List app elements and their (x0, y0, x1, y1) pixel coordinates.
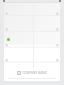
staticText: COMPANY NAME (22, 71, 47, 75)
button[interactable]: Status online (4, 2, 60, 81)
button[interactable]: Status online (7, 38, 10, 41)
button[interactable]: Logo (17, 71, 47, 75)
other: Logo (17, 71, 21, 75)
